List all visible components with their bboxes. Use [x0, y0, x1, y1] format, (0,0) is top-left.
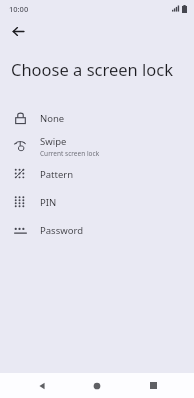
staticText: PIN: [40, 196, 57, 209]
staticText: None: [40, 112, 65, 125]
button[interactable]: Back: [28, 373, 56, 398]
staticText: 10:00: [9, 4, 29, 14]
button[interactable]: Swipe: [0, 132, 194, 160]
button[interactable]: None: [0, 104, 194, 132]
button[interactable]: Home: [83, 373, 111, 398]
staticText: Choose a screen lock: [11, 58, 183, 80]
staticText: Swipe: [40, 135, 67, 148]
staticText: Pattern: [40, 168, 74, 181]
staticText: Current screen lock: [40, 149, 100, 158]
button[interactable]: Password: [0, 216, 194, 244]
button[interactable]: PIN: [0, 188, 194, 216]
button[interactable]: Back: [6, 19, 30, 43]
staticText: Password: [40, 224, 83, 237]
button[interactable]: Pattern: [0, 160, 194, 188]
button[interactable]: Recent apps: [139, 373, 167, 398]
